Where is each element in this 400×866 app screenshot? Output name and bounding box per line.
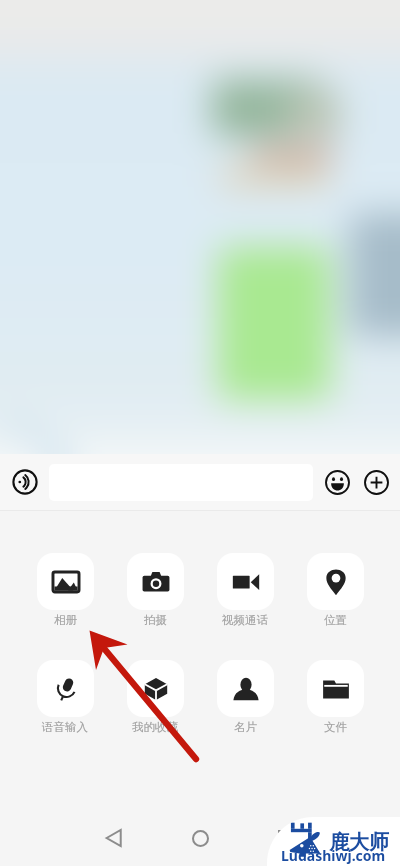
button[interactable]: 位置 — [290, 553, 380, 627]
button[interactable]: More — [360, 466, 392, 498]
staticText: 位置 — [324, 613, 347, 627]
button[interactable]: 我的收藏 — [110, 660, 200, 734]
staticText: 名片 — [234, 720, 257, 734]
staticText: 我的收藏 — [132, 720, 178, 734]
staticText: 视频通话 — [222, 613, 268, 627]
staticText: 相册 — [54, 613, 77, 627]
button[interactable]: 相册 — [20, 553, 110, 627]
button[interactable]: Voice input — [10, 467, 40, 497]
staticText: 拍摄 — [144, 613, 167, 627]
staticText: 鹿大师 — [329, 830, 389, 855]
staticText: 语音输入 — [42, 720, 88, 734]
button[interactable]: 名片 — [200, 660, 290, 734]
button[interactable]: 文件 — [290, 660, 380, 734]
button[interactable]: Emoji — [321, 466, 353, 498]
button[interactable]: 视频通话 — [200, 553, 290, 627]
button[interactable]: Back — [86, 810, 142, 866]
button[interactable]: 语音输入 — [20, 660, 110, 734]
button[interactable]: Home — [172, 810, 228, 866]
staticText: Ludashiwj.com — [281, 846, 386, 865]
staticText: 文件 — [324, 720, 347, 734]
button[interactable]: 拍摄 — [110, 553, 200, 627]
button[interactable]: Recents — [258, 810, 314, 866]
